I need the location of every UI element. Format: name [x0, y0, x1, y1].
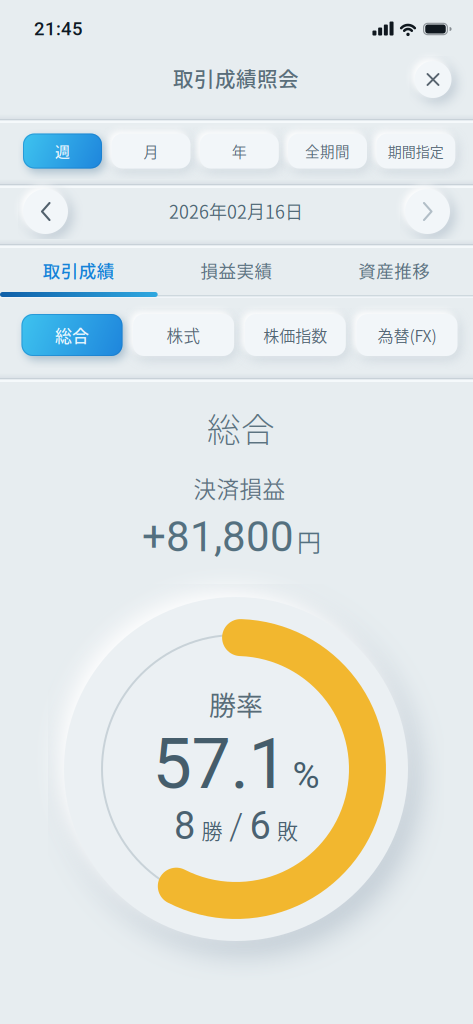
button[interactable]: 前の期間 — [23, 189, 68, 234]
staticText: 取引成績 — [43, 257, 115, 283]
button[interactable]: 期間指定 — [376, 133, 455, 168]
staticText: 損益実績 — [200, 257, 272, 283]
staticText: 資産推移 — [358, 257, 430, 283]
staticText: 勝率 — [209, 684, 263, 724]
staticText: 57.1 — [152, 723, 287, 805]
staticText: +81,800 — [142, 512, 294, 562]
button[interactable]: 為替(FX) — [356, 314, 457, 356]
button[interactable]: 月 — [111, 133, 190, 168]
staticText: 株価指数 — [263, 323, 327, 347]
button[interactable]: 総合 — [21, 314, 122, 356]
staticText: 勝 — [201, 815, 222, 845]
staticText: 敗 — [277, 815, 298, 845]
staticText: % — [292, 754, 319, 797]
staticText: 月 — [143, 140, 158, 162]
staticText: 総合 — [207, 403, 275, 452]
button[interactable]: 資産推移 — [315, 252, 473, 288]
button[interactable]: 全期間 — [288, 133, 367, 168]
staticText: 株式 — [167, 323, 201, 347]
button[interactable]: 次の期間 — [405, 189, 450, 234]
staticText: 週 — [55, 140, 70, 162]
button[interactable]: 年 — [200, 133, 279, 168]
button[interactable]: 取引成績 — [0, 252, 158, 288]
staticText: 21:45 — [34, 18, 83, 40]
staticText: 為替(FX) — [377, 323, 436, 347]
staticText: 2026年02月16日 — [169, 198, 303, 224]
button[interactable]: 株価指数 — [245, 314, 346, 356]
staticText: 8 — [174, 804, 195, 848]
staticText: 6 — [249, 804, 270, 848]
button[interactable]: 損益実績 — [158, 252, 315, 288]
staticText: 円 — [297, 523, 321, 558]
staticText: 決済損益 — [193, 472, 285, 504]
button[interactable]: 週 — [23, 133, 102, 168]
button[interactable]: 株式 — [133, 314, 234, 356]
staticText: 取引成績照会 — [173, 63, 299, 93]
staticText: 全期間 — [305, 140, 350, 161]
staticText: / — [229, 806, 243, 848]
staticText: 総合 — [55, 323, 89, 347]
button[interactable]: 閉じる — [414, 61, 451, 98]
staticText: 期間指定 — [388, 141, 444, 161]
staticText: 年 — [232, 140, 247, 162]
